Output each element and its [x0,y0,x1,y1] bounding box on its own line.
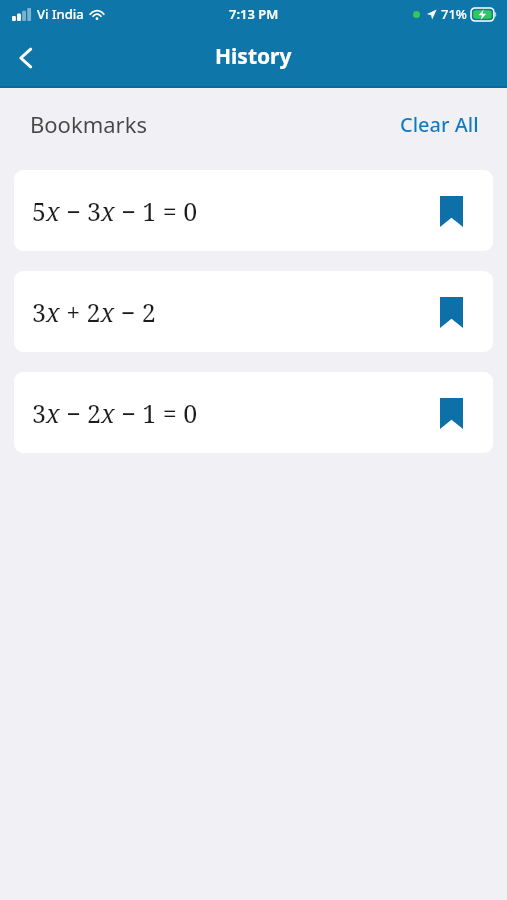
staticText: Bookmarks [30,109,147,139]
staticText: Clear All [400,111,479,138]
staticText: 71% [441,5,467,23]
button[interactable]: Bookmark [429,391,473,435]
staticText: 3x − 2x − 1 = 0 [32,396,198,430]
staticText: 3x + 2x − 2 [32,295,156,329]
staticText: Vi India [37,5,84,23]
button[interactable]: 5x − 3x − 1 = 0 [14,170,493,251]
button[interactable]: Clear All [400,111,479,138]
button[interactable]: 3x − 2x − 1 = 0 [14,372,493,453]
button[interactable]: Back [0,32,52,84]
staticText: 5x − 3x − 1 = 0 [32,194,198,228]
button[interactable]: Bookmarks [30,109,147,139]
staticText: 7:13 PM [229,5,279,23]
button[interactable]: Bookmark [429,290,473,334]
button[interactable]: Bookmark [429,189,473,233]
button[interactable]: 3x + 2x − 2 [14,271,493,352]
staticText: History [215,42,292,71]
